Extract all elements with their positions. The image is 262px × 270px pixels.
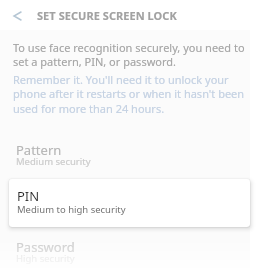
- staticText: Password: [16, 238, 75, 256]
- staticText: Medium to high security: [17, 203, 126, 216]
- staticText: To use face recognition securely, you ne…: [13, 40, 245, 70]
- button[interactable]: PIN: [9, 179, 250, 227]
- staticText: Medium security: [16, 155, 91, 168]
- staticText: PIN: [17, 187, 40, 205]
- staticText: High security: [16, 252, 75, 265]
- staticText: Remember it. You'll need it to unlock yo…: [13, 72, 245, 117]
- button[interactable]: Pattern: [9, 134, 250, 176]
- button[interactable]: Password: [9, 231, 250, 270]
- staticText: Pattern: [16, 141, 62, 159]
- button[interactable]: [10, 8, 25, 23]
- button[interactable]: SET SECURE SCREEN LOCK: [37, 8, 177, 23]
